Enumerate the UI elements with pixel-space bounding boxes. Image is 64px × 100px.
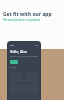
staticText: 9:41: [10, 44, 15, 47]
staticText: Hello, Alex: [10, 50, 27, 54]
staticText: Today: [10, 66, 17, 69]
staticText: Get fit with our app: [3, 11, 52, 18]
button[interactable]: Start workout: [10, 60, 18, 64]
staticText: Ready for today's workout?: [10, 55, 38, 58]
staticText: Personal trainer in pocket: [3, 18, 41, 22]
